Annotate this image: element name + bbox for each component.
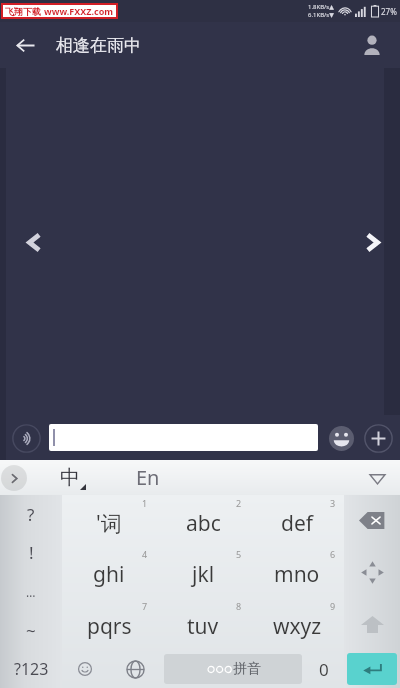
button[interactable]: 2 (156, 495, 250, 546)
staticText: 8 (236, 600, 242, 612)
staticText: abc (186, 509, 221, 538)
button[interactable]: 5 (156, 546, 250, 598)
button[interactable]: Enter (347, 653, 397, 685)
button[interactable]: 1 (62, 495, 156, 546)
staticText: tuv (187, 612, 219, 641)
button[interactable]: 9 (250, 598, 344, 650)
button[interactable]: Emoji keyboard (62, 650, 108, 688)
staticText: 27% (381, 6, 397, 17)
staticText: def (281, 509, 313, 538)
staticText: 3 (330, 497, 336, 509)
staticText: 2 (236, 497, 242, 509)
staticText: ~ (26, 619, 36, 642)
staticText: 6.1KB/s▼ (308, 11, 334, 19)
staticText: 中 (60, 465, 80, 490)
button[interactable]: ?123 (0, 650, 62, 688)
staticText: ?123 (14, 658, 49, 680)
staticText: ! (29, 541, 34, 564)
staticText: 7 (142, 600, 148, 612)
button[interactable]: 8 (156, 598, 250, 650)
staticText: 拼音 (233, 660, 261, 678)
button[interactable]: 4 (62, 546, 156, 598)
button[interactable]: Emoji (326, 423, 356, 453)
staticText: pqrs (87, 612, 132, 641)
staticText: 4 (142, 548, 148, 560)
button[interactable]: ? (0, 495, 62, 533)
staticText: 6 (330, 548, 336, 560)
button[interactable]: Previous page (16, 224, 52, 260)
staticText: 0 (319, 658, 329, 681)
button[interactable]: More options (362, 422, 394, 454)
button[interactable]: 拼音 (164, 654, 302, 684)
staticText: '词 (96, 509, 122, 538)
staticText: wxyz (273, 612, 322, 641)
staticText: … (26, 584, 36, 600)
button[interactable]: 中 (60, 465, 86, 490)
button[interactable]: 0 (304, 650, 344, 688)
button[interactable]: Shift (344, 598, 400, 650)
staticText: ghi (93, 560, 125, 589)
staticText: 9 (330, 600, 336, 612)
button[interactable]: ! (0, 533, 62, 572)
button[interactable]: 3 (250, 495, 344, 546)
staticText: 1 (142, 497, 148, 509)
button[interactable]: Backspace (344, 495, 400, 546)
button[interactable]: Next page (354, 224, 390, 260)
button[interactable]: Back (6, 26, 44, 64)
button[interactable]: ~ (0, 611, 62, 650)
staticText: En (136, 464, 160, 491)
button[interactable] (49, 424, 318, 451)
staticText: ? (27, 503, 35, 526)
button[interactable]: Hide keyboard (362, 463, 392, 493)
button[interactable]: 7 (62, 598, 156, 650)
button[interactable]: Change language (108, 650, 162, 688)
staticText: jkl (192, 560, 215, 589)
button[interactable]: Cursor control (344, 546, 400, 598)
button[interactable]: Voice message (10, 422, 42, 454)
staticText: 相逢在雨中 (56, 35, 141, 56)
button[interactable]: 6 (250, 546, 344, 598)
staticText: 5 (236, 548, 242, 560)
button[interactable]: Expand toolbar (1, 465, 27, 491)
button[interactable]: Profile (352, 25, 392, 65)
button[interactable]: … (0, 572, 62, 611)
staticText: mno (274, 560, 320, 589)
staticText: www.FXXZ.com (44, 5, 114, 17)
staticText: 飞翔下载 (5, 6, 41, 17)
staticText: 1.8KB/s▲ (308, 3, 334, 11)
button[interactable]: En (136, 464, 160, 491)
